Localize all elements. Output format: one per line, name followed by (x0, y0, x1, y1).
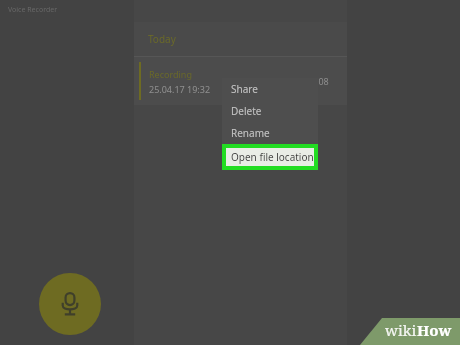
staticText: Rename (231, 126, 270, 140)
staticText: Open file location (231, 150, 314, 164)
staticText: Delete (231, 104, 262, 118)
staticText: Recording (149, 68, 192, 80)
button[interactable]: Share (222, 78, 318, 100)
staticText: How (417, 320, 452, 340)
staticText: :08 (316, 75, 329, 87)
staticText: Voice Recorder (8, 5, 58, 15)
staticText: Share (231, 82, 258, 96)
staticText: 25.04.17 19:32 (149, 83, 211, 95)
button[interactable]: Rename (222, 122, 318, 144)
button[interactable]: Recording (134, 57, 347, 105)
button[interactable]: Delete (222, 100, 318, 122)
staticText: wiki (385, 320, 417, 340)
button[interactable]: Record (39, 273, 101, 335)
button[interactable]: Open file location (226, 148, 314, 166)
staticText: Today (148, 32, 176, 46)
